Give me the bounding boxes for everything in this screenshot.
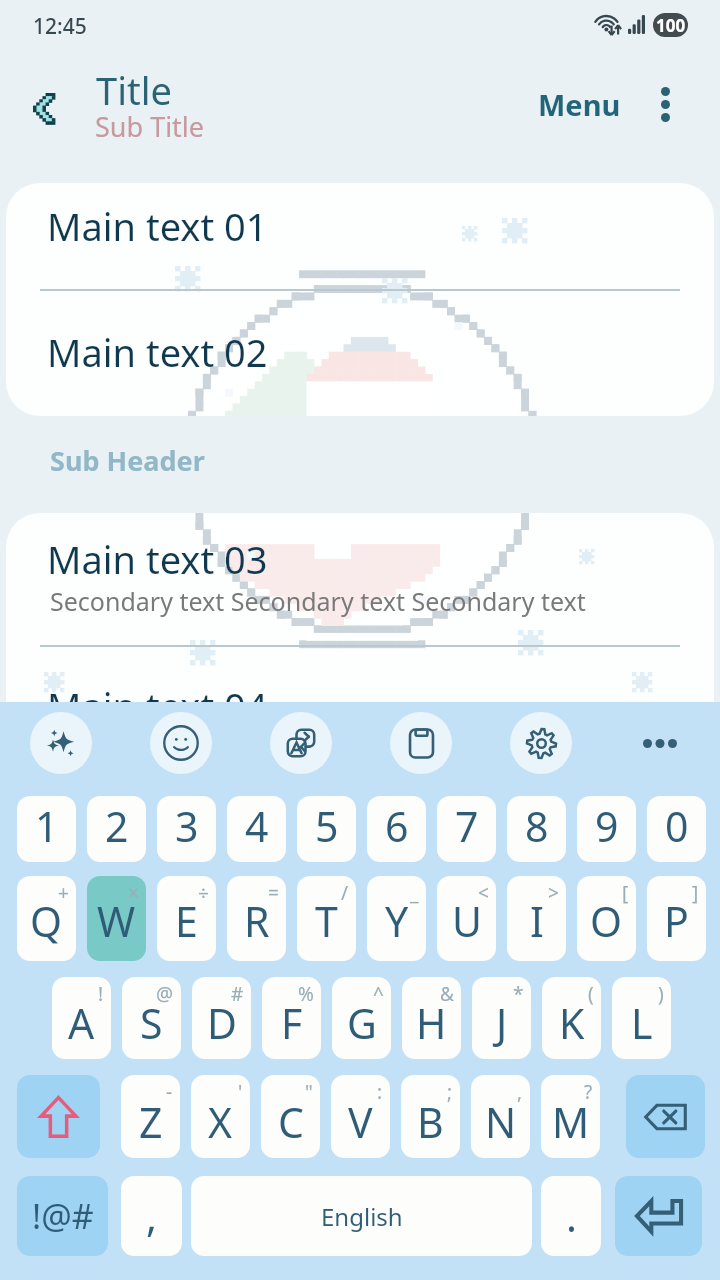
- button[interactable]: .: [541, 1176, 601, 1256]
- staticText: @: [156, 981, 174, 1007]
- staticText: <: [478, 880, 489, 906]
- staticText: %: [298, 981, 314, 1007]
- staticText: ]: [692, 880, 699, 906]
- staticText: Y: [385, 893, 409, 949]
- staticText: 6: [385, 798, 409, 854]
- button[interactable]: M: [541, 1075, 600, 1158]
- button[interactable]: N: [471, 1075, 530, 1158]
- button[interactable]: 8: [507, 796, 566, 862]
- staticText: !@#: [32, 1193, 94, 1239]
- staticText: >: [548, 880, 559, 906]
- button[interactable]: Menu: [526, 76, 633, 133]
- staticText: A: [68, 995, 95, 1051]
- button[interactable]: H: [402, 977, 461, 1059]
- button[interactable]: S: [122, 977, 181, 1059]
- staticText: 0: [665, 798, 689, 854]
- button[interactable]: W: [87, 876, 146, 961]
- button[interactable]: G: [332, 977, 391, 1059]
- staticText: 100: [656, 14, 686, 37]
- staticText: [: [622, 880, 629, 906]
- staticText: Main text 02: [47, 326, 268, 378]
- button[interactable]: J: [472, 977, 531, 1059]
- staticText: 8: [525, 798, 549, 854]
- button[interactable]: Settings: [510, 712, 572, 774]
- button[interactable]: T: [297, 876, 356, 961]
- staticText: U: [452, 893, 482, 949]
- staticText: :: [377, 1079, 383, 1105]
- button[interactable]: I: [507, 876, 566, 961]
- button[interactable]: [6, 183, 714, 289]
- button[interactable]: 2: [87, 796, 146, 862]
- button[interactable]: 3: [157, 796, 216, 862]
- staticText: !: [98, 981, 104, 1007]
- staticText: ?: [584, 1079, 593, 1105]
- button[interactable]: AI suggestions: [30, 712, 92, 774]
- button[interactable]: Back: [14, 78, 74, 138]
- staticText: -: [166, 1079, 173, 1105]
- button[interactable]: Enter: [615, 1176, 702, 1256]
- staticText: F: [281, 995, 303, 1051]
- button[interactable]: Q: [17, 876, 76, 961]
- button[interactable]: Y: [367, 876, 426, 961]
- button[interactable]: U: [437, 876, 496, 961]
- button[interactable]: P: [647, 876, 706, 961]
- button[interactable]: C: [261, 1075, 320, 1158]
- button[interactable]: [6, 291, 714, 416]
- staticText: Main text 01: [47, 200, 268, 252]
- button[interactable]: F: [262, 977, 321, 1059]
- button[interactable]: [6, 647, 714, 703]
- staticText: _: [410, 880, 419, 906]
- button[interactable]: X: [191, 1075, 250, 1158]
- staticText: English: [321, 1200, 403, 1233]
- staticText: V: [348, 1094, 373, 1150]
- staticText: Main text 04: [47, 680, 268, 732]
- staticText: 5: [315, 798, 339, 854]
- staticText: (: [588, 981, 594, 1007]
- staticText: Sub Title: [95, 108, 205, 145]
- button[interactable]: 4: [227, 796, 286, 862]
- staticText: S: [140, 995, 163, 1051]
- button[interactable]: R: [227, 876, 286, 961]
- button[interactable]: 5: [297, 796, 356, 862]
- button[interactable]: [6, 513, 714, 645]
- staticText: +: [58, 880, 69, 906]
- button[interactable]: ,: [121, 1176, 182, 1256]
- staticText: K: [559, 995, 585, 1051]
- staticText: 9: [595, 798, 619, 854]
- button[interactable]: K: [542, 977, 601, 1059]
- button[interactable]: Backspace: [626, 1075, 705, 1158]
- button[interactable]: 6: [367, 796, 426, 862]
- staticText: ×: [128, 880, 139, 906]
- staticText: 3: [175, 798, 199, 854]
- button[interactable]: 7: [437, 796, 496, 862]
- button[interactable]: V: [331, 1075, 390, 1158]
- staticText: B: [417, 1094, 444, 1150]
- staticText: ÷: [198, 880, 209, 906]
- button[interactable]: E: [157, 876, 216, 961]
- button[interactable]: English: [191, 1176, 532, 1256]
- staticText: Secondary text Secondary text Secondary …: [50, 584, 586, 618]
- button[interactable]: A: [52, 977, 111, 1059]
- button[interactable]: !@#: [17, 1176, 108, 1256]
- staticText: O: [590, 893, 623, 949]
- button[interactable]: Shift: [17, 1075, 100, 1158]
- staticText: Title: [96, 64, 172, 116]
- staticText: C: [278, 1094, 304, 1150]
- button[interactable]: Z: [121, 1075, 180, 1158]
- button[interactable]: More: [629, 712, 691, 774]
- staticText: 7: [455, 798, 479, 854]
- button[interactable]: 1: [17, 796, 76, 862]
- button[interactable]: L: [612, 977, 671, 1059]
- button[interactable]: O: [577, 876, 636, 961]
- staticText: ^: [373, 981, 384, 1007]
- button[interactable]: More options: [637, 76, 693, 132]
- button[interactable]: Clipboard: [390, 712, 452, 774]
- staticText: J: [496, 995, 508, 1051]
- button[interactable]: 9: [577, 796, 636, 862]
- button[interactable]: 0: [647, 796, 706, 862]
- staticText: /: [341, 880, 349, 906]
- button[interactable]: Emoji: [150, 712, 212, 774]
- button[interactable]: D: [192, 977, 251, 1059]
- button[interactable]: Translate: [270, 712, 332, 774]
- button[interactable]: B: [401, 1075, 460, 1158]
